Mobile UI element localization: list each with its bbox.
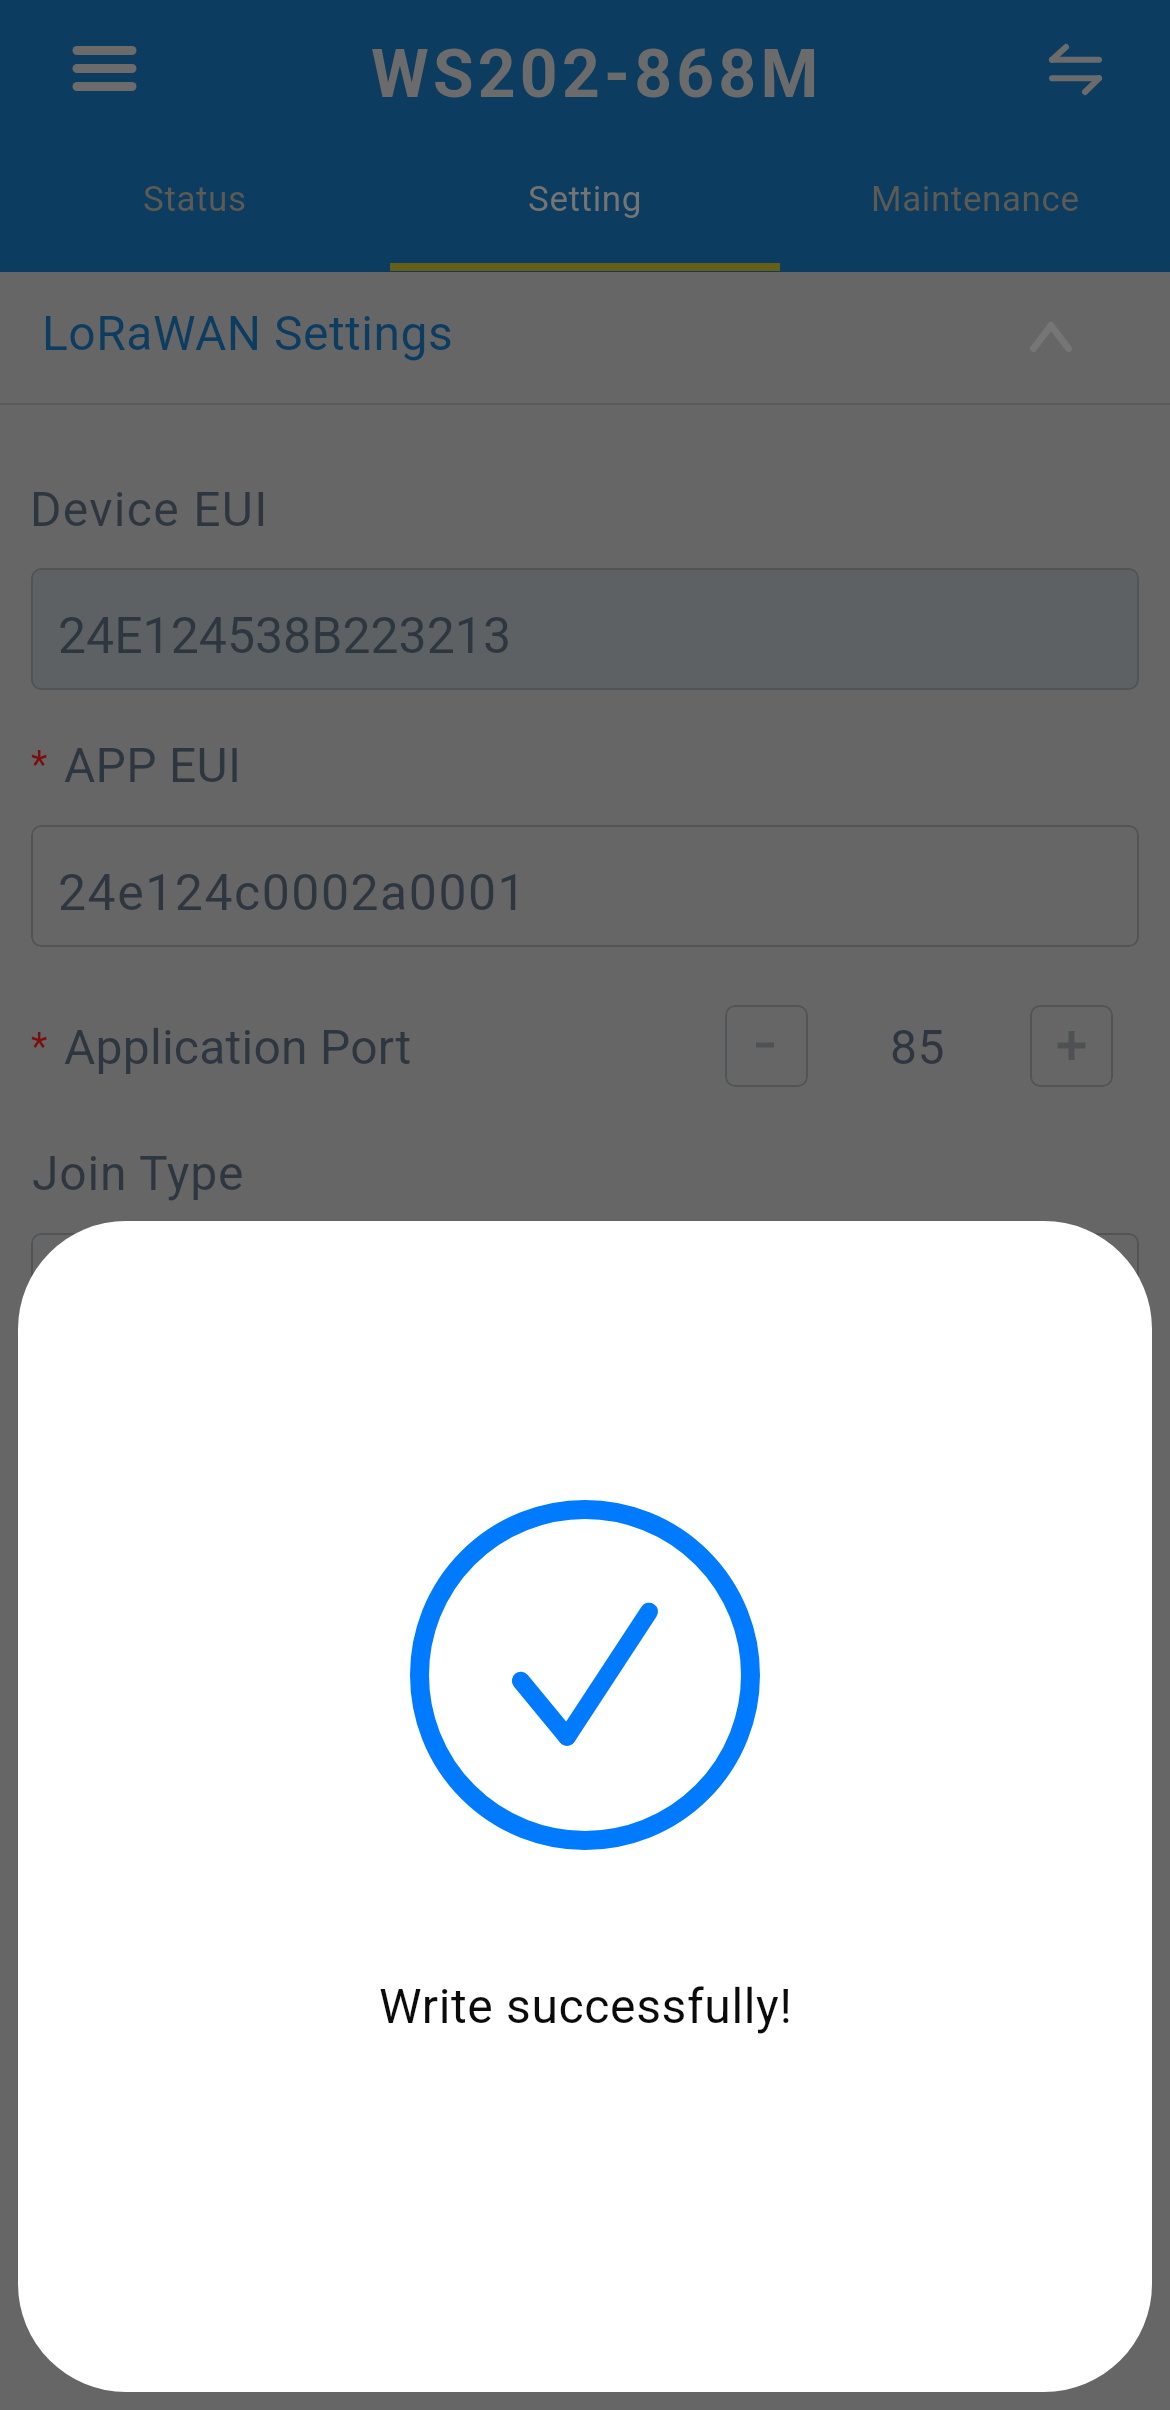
button[interactable]: Increase port <box>1030 1005 1113 1087</box>
staticText: Write successfully! <box>379 1978 793 2034</box>
button[interactable]: Switch device <box>1010 10 1155 126</box>
staticText: 24E124538B223213 <box>58 607 511 666</box>
staticText: LoRaWAN Settings <box>42 305 454 361</box>
staticText: * <box>31 743 48 788</box>
staticText: Application Port <box>64 1019 412 1075</box>
button[interactable]: LoRaWAN Settings <box>0 272 1170 404</box>
staticText: Maintenance <box>871 179 1080 220</box>
staticText: 85 <box>890 1019 946 1075</box>
button[interactable]: Decrease port <box>725 1005 808 1087</box>
staticText: Join Type <box>32 1145 245 1201</box>
button[interactable]: 24e124c0002a0001 <box>31 825 1139 947</box>
button[interactable]: Maintenance <box>780 152 1170 272</box>
button[interactable]: 24E124538B223213 <box>31 568 1139 690</box>
staticText: * <box>31 1025 48 1070</box>
staticText: Setting <box>528 179 642 220</box>
staticText: Status <box>143 179 247 220</box>
button[interactable]: Status <box>0 152 390 272</box>
button[interactable]: OTAA <box>31 1233 1139 1355</box>
button[interactable]: Setting <box>390 152 780 272</box>
staticText: Device EUI <box>30 481 269 537</box>
staticText: 24e124c0002a0001 <box>58 864 528 923</box>
staticText: WS202-868M <box>371 36 823 113</box>
staticText: APP EUI <box>64 737 242 793</box>
button[interactable]: Open navigation menu <box>15 10 195 126</box>
